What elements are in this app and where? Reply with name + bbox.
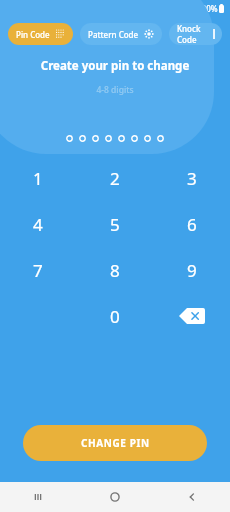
button[interactable]: Pattern Code bbox=[80, 23, 162, 45]
staticText: 2 bbox=[110, 167, 120, 190]
staticText: 6 bbox=[187, 213, 197, 236]
staticText: 7 bbox=[33, 259, 43, 282]
button[interactable]: 4 bbox=[18, 204, 58, 244]
button[interactable]: 8 bbox=[95, 250, 135, 290]
staticText: Pin Code bbox=[16, 29, 50, 40]
button[interactable]: 7 bbox=[18, 250, 58, 290]
staticText: Pattern Code bbox=[88, 29, 139, 40]
button[interactable]: 5 bbox=[95, 204, 135, 244]
staticText: CHANGE PIN bbox=[81, 436, 150, 450]
button[interactable]: 3 bbox=[172, 158, 212, 198]
button[interactable]: Back bbox=[153, 482, 230, 512]
staticText: 9 bbox=[187, 259, 197, 282]
button[interactable]: 9 bbox=[172, 250, 212, 290]
button[interactable]: Recents bbox=[0, 482, 76, 512]
button[interactable]: Pin Code bbox=[8, 23, 73, 45]
staticText: 3 bbox=[187, 167, 197, 190]
staticText: 5 bbox=[110, 213, 120, 236]
staticText: 100% bbox=[197, 3, 218, 14]
button[interactable]: Home bbox=[76, 482, 153, 512]
staticText: 4-8 digits bbox=[0, 84, 230, 96]
button[interactable]: 6 bbox=[172, 204, 212, 244]
button[interactable]: 1 bbox=[18, 158, 58, 198]
button[interactable]: Delete bbox=[179, 308, 205, 324]
staticText: Knock Code bbox=[177, 23, 214, 45]
staticText: 0 bbox=[110, 305, 120, 328]
button[interactable]: CHANGE PIN bbox=[23, 425, 207, 461]
button[interactable]: 0 bbox=[95, 296, 135, 336]
button[interactable]: 2 bbox=[95, 158, 135, 198]
staticText: Create your pin to change bbox=[0, 58, 230, 74]
staticText: 1 bbox=[33, 167, 43, 190]
staticText: 4 bbox=[33, 213, 43, 236]
staticText: 8 bbox=[110, 259, 120, 282]
button[interactable]: Knock Code bbox=[169, 23, 222, 45]
